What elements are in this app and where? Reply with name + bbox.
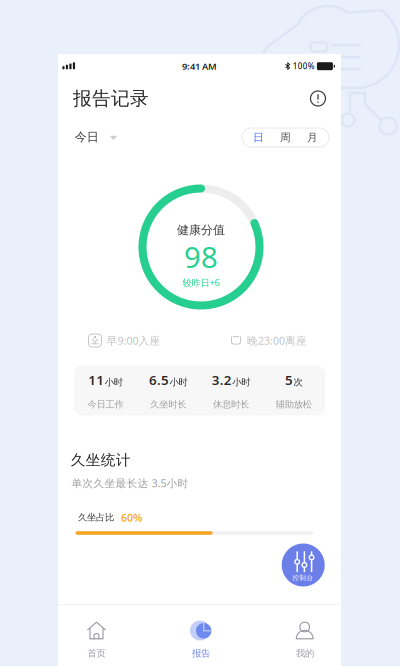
staticText: 久坐时长 <box>150 399 186 410</box>
staticText: 11 <box>88 371 104 389</box>
button[interactable]: 月 <box>299 128 326 147</box>
staticText: 小时 <box>232 376 250 388</box>
button[interactable]: 今日 <box>75 127 117 147</box>
staticText: 久坐统计 <box>71 451 131 469</box>
staticText: 60% <box>121 510 142 525</box>
staticText: 9:41 AM <box>182 60 217 72</box>
staticText: 次 <box>293 376 302 388</box>
staticText: 健康分值 <box>177 223 225 237</box>
staticText: 单次久坐最长达 3.5小时 <box>71 476 188 490</box>
staticText: 早9:00入座 <box>106 333 160 348</box>
button[interactable]: 我的 <box>258 604 352 666</box>
staticText: 今日工作 <box>87 399 123 410</box>
staticText: 小时 <box>169 376 187 388</box>
staticText: 100% <box>293 61 315 71</box>
button[interactable]: 日 <box>245 128 272 147</box>
button[interactable]: 控制台 <box>282 543 325 586</box>
staticText: 3.2 <box>212 371 232 389</box>
staticText: 报告记录 <box>73 87 149 110</box>
staticText: 晚23:00离座 <box>247 333 307 348</box>
button[interactable]: 周 <box>272 128 299 147</box>
button[interactable]: 报告 <box>154 604 248 666</box>
staticText: 我的 <box>296 648 314 659</box>
staticText: 98 <box>184 237 218 276</box>
staticText: 小时 <box>105 376 123 388</box>
staticText: 休息时长 <box>213 399 249 410</box>
staticText: 报告 <box>192 648 210 659</box>
staticText: 周 <box>280 131 291 144</box>
staticText: 首页 <box>87 648 105 659</box>
staticText: 6.5 <box>149 371 169 389</box>
staticText: 控制台 <box>292 574 313 582</box>
button[interactable]: Info <box>305 85 331 111</box>
staticText: 久坐占比 <box>78 512 114 523</box>
staticText: 5 <box>285 371 293 389</box>
staticText: 日 <box>253 131 264 144</box>
staticText: 今日 <box>75 130 99 144</box>
button[interactable]: 首页 <box>49 604 143 666</box>
staticText: 月 <box>307 131 318 144</box>
staticText: 较昨日+6 <box>182 276 219 289</box>
staticText: 辅助放松 <box>276 399 312 410</box>
